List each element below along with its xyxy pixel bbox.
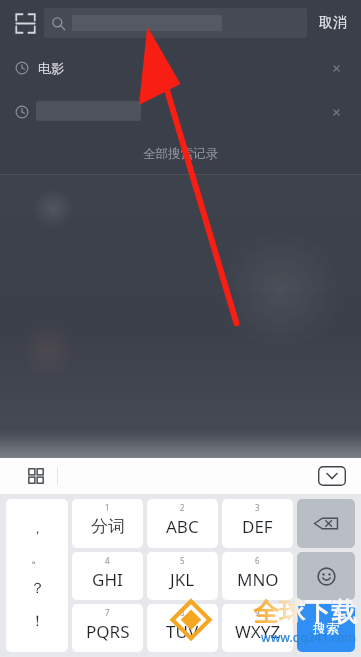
- staticText: GHI: [92, 568, 123, 591]
- staticText: TUV: [166, 620, 199, 643]
- button[interactable]: 5: [147, 552, 218, 600]
- button[interactable]: ，: [6, 499, 68, 652]
- button[interactable]: Keyboard options: [22, 462, 50, 490]
- staticText: 搜索: [313, 620, 339, 636]
- staticText: 分词: [91, 516, 125, 537]
- staticText: 8: [180, 607, 185, 618]
- button[interactable]: 1: [72, 499, 143, 548]
- button[interactable]: Delete history item: [325, 57, 347, 79]
- button[interactable]: 7: [72, 604, 143, 652]
- button[interactable]: Hide keyboard: [317, 465, 347, 487]
- button[interactable]: Scan QR code: [10, 8, 40, 38]
- staticText: 5: [180, 555, 185, 566]
- button[interactable]: Backspace: [297, 499, 355, 548]
- button[interactable]: Delete history item: [325, 101, 347, 123]
- staticText: 。: [31, 550, 44, 566]
- staticText: 全部搜索记录: [143, 146, 218, 162]
- button[interactable]: 全部搜索记录: [0, 134, 361, 174]
- staticText: 9: [255, 607, 260, 618]
- staticText: 电影: [38, 60, 64, 76]
- staticText: JKL: [170, 568, 195, 591]
- staticText: PQRS: [86, 620, 130, 643]
- button[interactable]: 2: [147, 499, 218, 548]
- staticText: 全球下载: [253, 596, 357, 629]
- staticText: 7: [105, 607, 110, 618]
- button[interactable]: [44, 8, 307, 38]
- button[interactable]: 4: [72, 552, 143, 600]
- staticText: www.qq241.com: [261, 629, 357, 645]
- button[interactable]: 3: [222, 499, 293, 548]
- staticText: ABC: [166, 515, 199, 538]
- button[interactable]: 搜索: [297, 604, 355, 652]
- button[interactable]: 取消: [313, 8, 353, 38]
- staticText: WXYZ: [235, 620, 281, 643]
- staticText: ，: [31, 520, 44, 536]
- staticText: 取消: [319, 14, 347, 32]
- staticText: 6: [255, 555, 260, 566]
- staticText: MNO: [237, 568, 279, 591]
- staticText: DEF: [242, 515, 273, 538]
- button[interactable]: 6: [222, 552, 293, 600]
- button[interactable]: 电影: [0, 46, 361, 90]
- button[interactable]: Emoji: [297, 552, 355, 600]
- button[interactable]: 8: [147, 604, 218, 652]
- staticText: ！: [30, 612, 45, 631]
- button[interactable]: 9: [222, 604, 293, 652]
- staticText: 2: [180, 502, 185, 513]
- staticText: ？: [30, 579, 45, 598]
- button[interactable]: Delete history item: [0, 90, 361, 134]
- staticText: 1: [105, 502, 110, 513]
- staticText: 3: [255, 502, 260, 513]
- staticText: 4: [105, 555, 110, 566]
